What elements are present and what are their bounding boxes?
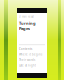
button[interactable]: Where it begins bbox=[19, 53, 45, 56]
button[interactable]: Late at night bbox=[19, 64, 45, 67]
staticText: Turning bbox=[19, 20, 36, 26]
staticText: Pages bbox=[19, 26, 30, 31]
staticText: Where it begins bbox=[19, 53, 42, 56]
staticText: Contents bbox=[19, 47, 32, 51]
staticText: 3 min read bbox=[19, 15, 34, 18]
button[interactable]: Their words bbox=[19, 58, 45, 62]
staticText: Their words bbox=[19, 58, 35, 62]
staticText: Late at night bbox=[19, 64, 36, 67]
